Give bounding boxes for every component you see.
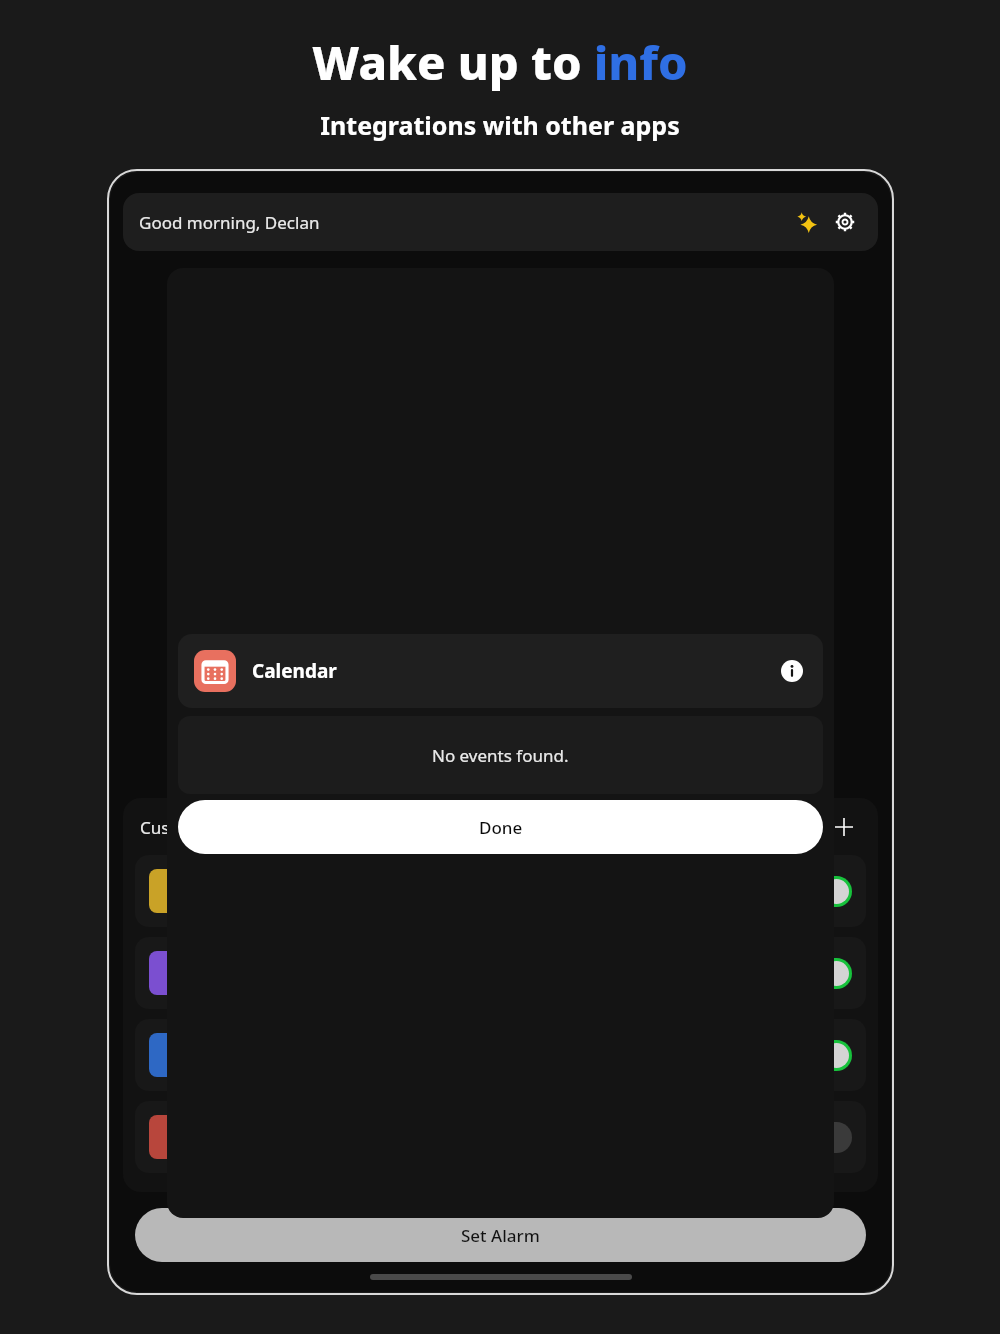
button[interactable]: Done [178,800,823,854]
button[interactable]: On [800,958,852,989]
staticText: Integrations with other apps [320,108,680,142]
button[interactable]: Settings [828,205,862,239]
staticText: Set Alarm [461,1224,540,1247]
button[interactable]: Calendar [178,634,823,708]
staticText: Wake up to info [312,30,688,94]
staticText: Good morning, Declan [139,211,320,234]
button[interactable]: Info [777,656,807,686]
button[interactable]: Add [827,810,861,844]
button[interactable]: On [800,876,852,907]
button[interactable]: On [135,1019,866,1091]
staticText: Done [479,816,523,839]
button[interactable]: AI suggestions [790,205,824,239]
button[interactable]: On [800,1040,852,1071]
button[interactable]: Off [135,1101,866,1173]
button[interactable]: On [135,855,866,927]
button[interactable]: Off [800,1122,852,1153]
staticText: Custom [140,816,202,839]
button[interactable]: Set Alarm [135,1208,866,1262]
staticText: No events found. [432,744,569,767]
staticText: Calendar [252,658,337,684]
button[interactable]: On [135,937,866,1009]
